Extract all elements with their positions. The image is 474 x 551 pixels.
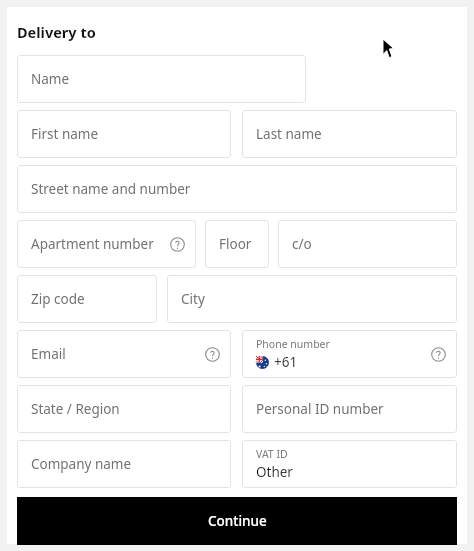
staticText: c/o <box>292 235 446 253</box>
button[interactable]: Zip code <box>17 275 157 323</box>
button[interactable]: Company name <box>17 440 231 488</box>
button[interactable]: Phone number <box>242 330 457 378</box>
staticText: Name <box>31 70 295 88</box>
button[interactable]: Last name <box>242 110 457 158</box>
button[interactable]: Street name and number <box>17 165 457 213</box>
staticText: +61 <box>274 353 298 371</box>
staticText: Floor <box>219 235 258 253</box>
staticText: First name <box>31 125 220 143</box>
button[interactable]: c/o <box>278 220 457 268</box>
button[interactable]: Floor <box>205 220 269 268</box>
staticText: Email <box>31 345 204 363</box>
button[interactable]: City <box>167 275 457 323</box>
staticText: Street name and number <box>31 180 446 198</box>
staticText: VAT ID <box>256 447 288 461</box>
staticText: Continue <box>208 512 267 530</box>
button[interactable]: State / Region <box>17 385 231 433</box>
button[interactable]: Email <box>17 330 231 378</box>
staticText: Apartment number <box>31 235 169 253</box>
staticText: Last name <box>256 125 446 143</box>
button[interactable]: Help <box>169 236 185 252</box>
staticText: Phone number <box>256 337 330 351</box>
staticText: Personal ID number <box>256 400 446 418</box>
staticText: State / Region <box>31 400 220 418</box>
staticText: Zip code <box>31 290 146 308</box>
button[interactable]: Continue <box>17 497 457 545</box>
button[interactable]: First name <box>17 110 231 158</box>
staticText: Delivery to <box>17 22 96 42</box>
button[interactable]: Help <box>204 346 220 362</box>
staticText: Company name <box>31 455 220 473</box>
button[interactable]: Personal ID number <box>242 385 457 433</box>
staticText: City <box>181 290 446 308</box>
button[interactable]: Name <box>17 55 306 103</box>
button[interactable]: VAT ID <box>242 440 457 488</box>
staticText: Other <box>256 463 293 481</box>
button[interactable]: Help <box>430 346 446 362</box>
button[interactable]: Apartment number <box>17 220 196 268</box>
